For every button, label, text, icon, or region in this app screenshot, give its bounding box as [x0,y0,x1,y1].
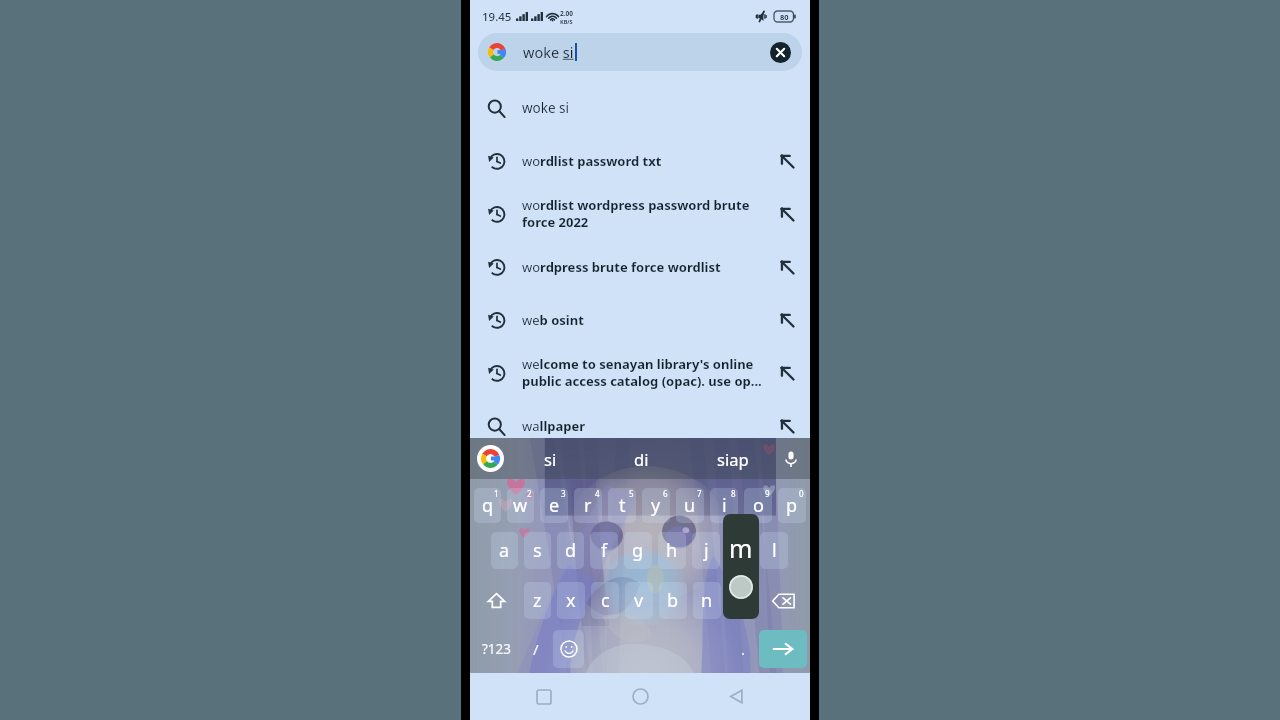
button[interactable]: Google [477,445,504,472]
button[interactable]: web osint [470,293,810,346]
button[interactable]: Insert suggestion [777,416,797,436]
button[interactable]: Insert suggestion [777,257,797,277]
button[interactable]: j [692,532,720,569]
staticText: f [601,538,608,563]
staticText: wordlist wordpress password brute force … [522,196,766,231]
button[interactable]: i [710,488,738,523]
staticText: 1 [494,488,499,499]
button[interactable]: di [596,438,687,479]
staticText: n [701,588,713,613]
button[interactable]: Space [586,630,730,668]
staticText: welcome to senayan library's online publ… [522,355,766,390]
button[interactable]: Search [759,630,807,668]
button[interactable]: Insert suggestion [777,310,797,330]
staticText: h [666,538,678,563]
button[interactable]: Emoji [553,630,584,668]
staticText: a [499,538,510,563]
staticText: wordpress brute force wordlist [522,258,721,276]
other: m key pressed [723,514,759,619]
button[interactable]: z [524,582,551,619]
button[interactable]: Insert suggestion [777,204,797,224]
button[interactable]: welcome to senayan library's online publ… [470,346,810,399]
staticText: q [482,493,494,518]
staticText: web osint [522,311,584,329]
staticText: u [684,493,696,518]
button[interactable]: b [659,582,687,619]
staticText: d [565,538,577,563]
button[interactable]: v [625,582,653,619]
button[interactable]: woke si [470,81,810,134]
staticText: KB/S [560,18,573,25]
button[interactable]: a [491,532,518,569]
staticText: wallpaper [522,417,586,435]
staticText: di [634,448,649,470]
staticText: 2 [527,488,532,499]
button[interactable]: y [642,488,670,523]
staticText: m [729,531,753,565]
staticText: 9 [765,488,770,499]
button[interactable]: Back [713,673,760,720]
button[interactable]: Clear search [770,42,791,63]
button[interactable]: si [504,438,596,479]
staticText: v [634,588,644,613]
button[interactable]: q [474,488,501,523]
button[interactable]: r [574,488,602,523]
button[interactable]: Voice input [778,446,804,472]
button[interactable]: k [726,532,754,569]
button[interactable]: wordpress brute force wordlist [470,240,810,293]
button[interactable]: c [591,582,619,619]
button[interactable]: Home [617,673,664,720]
button[interactable]: Shift [472,582,521,619]
staticText: c [601,588,610,613]
staticText: 19.45 [482,9,512,25]
button[interactable]: t [608,488,636,523]
button[interactable]: n [693,582,721,619]
button[interactable]: s [524,532,551,569]
button[interactable]: w [507,488,534,523]
button[interactable]: d [557,532,584,569]
button[interactable]: m [727,582,755,619]
button[interactable]: g [624,532,652,569]
button[interactable]: ?123 [472,630,521,668]
button[interactable]: Insert suggestion [777,151,797,171]
staticText: woke si [523,42,574,62]
staticText: t [619,493,626,518]
button[interactable]: / [521,630,551,668]
staticText: 4 [595,488,600,499]
staticText: i [722,493,727,518]
staticText: 2.00 [560,9,573,18]
staticText: ?123 [482,640,512,658]
staticText: g [632,538,644,563]
button[interactable]: Insert suggestion [777,363,797,383]
button[interactable]: o [744,488,772,523]
button[interactable]: x [557,582,585,619]
button[interactable]: siap [687,438,778,479]
staticText: 7 [697,488,702,499]
staticText: m [733,588,750,613]
staticText: si [544,448,557,470]
button[interactable]: u [676,488,704,523]
button[interactable]: wordlist password txt [470,134,810,187]
button[interactable]: woke si [478,33,802,71]
button[interactable]: Backspace [758,582,808,619]
staticText: y [651,493,661,518]
button[interactable]: p [778,488,806,523]
staticText: p [786,493,798,518]
button[interactable]: wallpaper [470,399,810,452]
staticText: s [533,538,542,563]
staticText: 8 [731,488,736,499]
staticText: k [735,538,745,563]
button[interactable]: l [760,532,788,569]
button[interactable]: Recent apps [520,673,567,720]
button[interactable]: h [658,532,686,569]
staticText: o [753,493,764,518]
staticText: 6 [663,488,668,499]
button[interactable]: f [590,532,618,569]
staticText: e [549,493,560,518]
staticText: wordlist password txt [522,152,662,170]
staticText: r [584,493,592,518]
button[interactable]: . [730,630,757,668]
button[interactable]: e [540,488,568,523]
button[interactable]: wordlist wordpress password brute force … [470,187,810,240]
staticText: 5 [629,488,634,499]
